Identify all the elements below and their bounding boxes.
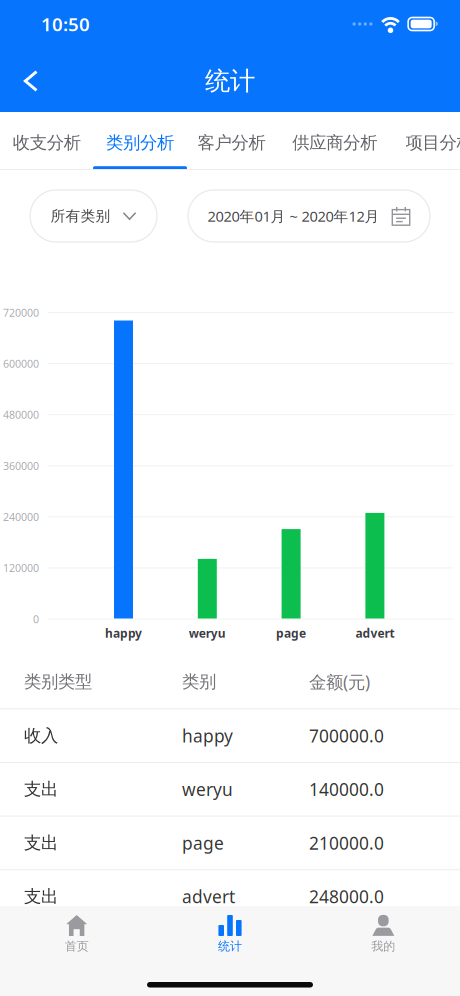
staticText: advert xyxy=(182,885,235,908)
staticText: happy xyxy=(182,724,233,747)
staticText: 480000 xyxy=(3,408,39,422)
button[interactable]: 收支分析 xyxy=(0,112,94,170)
button[interactable]: 返回 xyxy=(0,50,62,112)
button[interactable]: 供应商分析 xyxy=(277,112,393,170)
button[interactable]: 首页 xyxy=(0,906,153,960)
staticText: 140000.0 xyxy=(309,778,384,801)
staticText: 金额(元) xyxy=(309,670,370,693)
staticText: 支出 xyxy=(24,779,58,800)
staticText: 类别类型 xyxy=(24,671,92,692)
staticText: 支出 xyxy=(24,886,58,907)
button[interactable]: 项目分析 xyxy=(393,112,460,170)
staticText: 120000 xyxy=(3,561,39,575)
staticText: 首页 xyxy=(65,939,89,954)
staticText: 支出 xyxy=(24,832,58,854)
staticText: 统计 xyxy=(205,65,255,96)
staticText: 客户分析 xyxy=(197,132,265,153)
staticText: weryu xyxy=(189,625,226,641)
button[interactable]: 所有类别 xyxy=(30,190,157,242)
button[interactable]: 统计 xyxy=(153,906,307,960)
staticText: 类别分析 xyxy=(106,132,174,153)
staticText: 248000.0 xyxy=(309,885,384,908)
staticText: 700000.0 xyxy=(309,724,384,747)
staticText: 360000 xyxy=(3,459,39,473)
button[interactable]: 我的 xyxy=(307,906,460,960)
staticText: 210000.0 xyxy=(309,831,384,854)
staticText: 720000 xyxy=(3,305,39,320)
staticText: 项目分析 xyxy=(405,132,460,153)
staticText: 240000 xyxy=(3,510,39,524)
staticText: happy xyxy=(105,625,142,641)
staticText: advert xyxy=(355,625,394,641)
button[interactable]: 客户分析 xyxy=(186,112,277,170)
staticText: 0 xyxy=(33,612,39,626)
button[interactable]: 2020年01月 ~ 2020年12月 xyxy=(188,190,430,242)
staticText: 供应商分析 xyxy=(292,132,377,153)
staticText: 600000 xyxy=(3,356,39,371)
staticText: 收入 xyxy=(24,725,58,746)
staticText: page xyxy=(276,625,306,641)
staticText: page xyxy=(182,831,224,854)
staticText: 类别 xyxy=(182,671,216,692)
staticText: 统计 xyxy=(218,939,242,954)
staticText: 2020年01月 ~ 2020年12月 xyxy=(207,206,379,226)
button[interactable]: 类别分析 xyxy=(94,112,186,170)
staticText: 我的 xyxy=(371,939,395,954)
staticText: weryu xyxy=(182,778,233,801)
staticText: 收支分析 xyxy=(13,132,81,153)
staticText: 10:50 xyxy=(41,12,90,36)
staticText: 所有类别 xyxy=(50,207,110,225)
